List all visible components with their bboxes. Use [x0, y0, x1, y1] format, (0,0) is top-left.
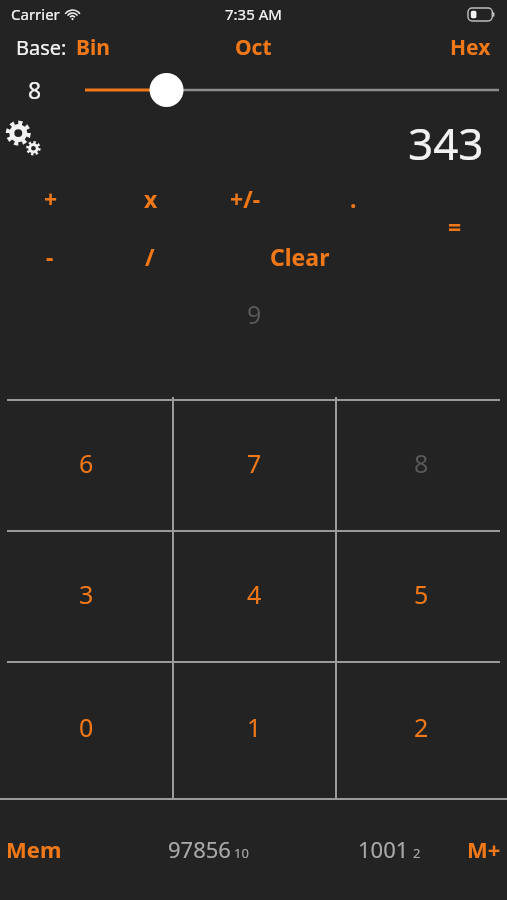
button[interactable]: 0: [0, 659, 173, 794]
staticText: 8: [28, 74, 42, 105]
staticText: .: [350, 183, 357, 214]
staticText: 343: [408, 113, 484, 165]
staticText: =: [448, 211, 462, 242]
staticText: M+: [467, 834, 501, 864]
staticText: 3: [79, 577, 94, 611]
button[interactable]: 2: [336, 659, 507, 794]
button[interactable]: +: [36, 175, 66, 222]
button[interactable]: 3: [0, 528, 173, 659]
staticText: Mem: [6, 834, 62, 864]
staticText: Hex: [450, 33, 491, 62]
staticText: 2: [413, 844, 421, 862]
staticText: 10: [234, 844, 249, 862]
staticText: x: [144, 183, 158, 214]
staticText: 7: [247, 446, 262, 480]
button[interactable]: Clear: [262, 233, 338, 280]
staticText: -: [46, 241, 54, 272]
staticText: 2: [414, 710, 429, 744]
staticText: 1001: [358, 834, 409, 864]
staticText: Bin: [76, 33, 110, 62]
button[interactable]: 8: [336, 397, 507, 528]
staticText: 4: [247, 577, 262, 611]
button[interactable]: /: [137, 233, 163, 280]
staticText: +/-: [230, 183, 261, 214]
staticText: Clear: [270, 241, 330, 272]
staticText: Base:: [16, 34, 67, 61]
button[interactable]: Oct: [225, 29, 282, 66]
button[interactable]: 1: [173, 659, 336, 794]
button[interactable]: 7: [173, 397, 336, 528]
staticText: +: [44, 183, 58, 214]
staticText: /: [145, 241, 155, 272]
button[interactable]: 5: [336, 528, 507, 659]
staticText: Carrier: [11, 4, 60, 24]
button[interactable]: .: [342, 175, 365, 222]
button[interactable]: M+: [459, 828, 507, 870]
button[interactable]: Settings: [4, 118, 46, 160]
button[interactable]: 4: [173, 528, 336, 659]
button[interactable]: +/-: [222, 175, 269, 222]
staticText: 7:35 AM: [225, 4, 282, 24]
button[interactable]: Base slider: [85, 70, 499, 110]
staticText: 5: [414, 577, 429, 611]
button[interactable]: =: [440, 203, 470, 250]
button[interactable]: Base:: [16, 33, 110, 62]
button[interactable]: Hex: [450, 29, 507, 66]
staticText: 6: [79, 446, 94, 480]
button[interactable]: Mem: [0, 828, 70, 870]
staticText: 1: [247, 710, 262, 744]
button[interactable]: 6: [0, 397, 173, 528]
staticText: 9: [247, 297, 262, 331]
button[interactable]: x: [136, 175, 166, 222]
staticText: 97856: [168, 834, 231, 864]
staticText: 0: [79, 710, 94, 744]
staticText: Oct: [235, 33, 272, 62]
button[interactable]: -: [38, 233, 62, 280]
staticText: 8: [414, 446, 429, 480]
button[interactable]: 9: [237, 287, 272, 341]
